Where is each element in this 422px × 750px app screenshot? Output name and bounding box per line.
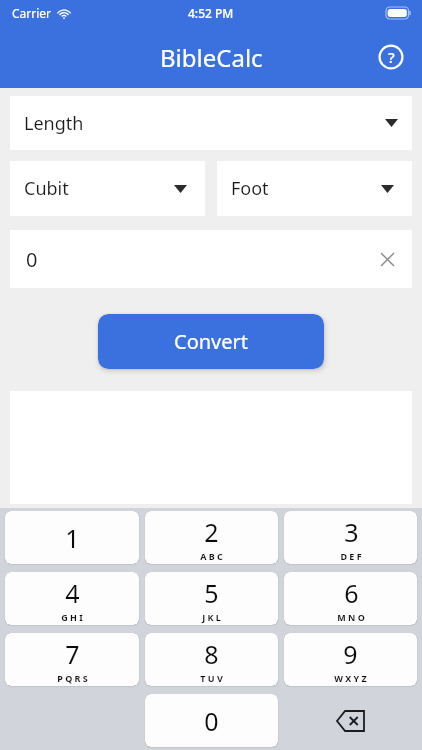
button[interactable]: 3 [284, 511, 417, 564]
button[interactable]: 9 [284, 633, 417, 686]
staticText: 9 [343, 637, 358, 671]
staticText: A B C [200, 550, 223, 562]
button[interactable]: Length [10, 96, 412, 150]
staticText: Cubit [24, 176, 69, 201]
button[interactable]: 0 [145, 694, 278, 747]
button[interactable]: Clear [374, 246, 400, 272]
staticText: BibleCalc [160, 41, 263, 74]
staticText: 0 [26, 246, 38, 273]
staticText: 4 [65, 576, 80, 610]
staticText: 2 [204, 515, 219, 549]
staticText: Convert [174, 328, 249, 355]
button[interactable]: 2 [145, 511, 278, 564]
staticText: Foot [231, 176, 269, 201]
button[interactable]: Help [372, 38, 410, 76]
button[interactable]: Backspace [284, 694, 417, 747]
staticText: Carrier [12, 5, 52, 21]
staticText: 0 [204, 704, 219, 738]
button[interactable]: 0 [10, 230, 412, 288]
staticText: D E F [340, 550, 362, 562]
button[interactable]: 4 [5, 572, 139, 625]
staticText: 8 [204, 637, 219, 671]
button[interactable]: 6 [284, 572, 417, 625]
button[interactable]: Cubit [10, 161, 205, 216]
staticText: P Q R S [57, 672, 88, 684]
button[interactable]: 8 [145, 633, 278, 686]
staticText: 7 [65, 637, 80, 671]
button[interactable]: 5 [145, 572, 278, 625]
button[interactable]: 1 [5, 511, 139, 564]
staticText: M N O [337, 611, 365, 623]
staticText: 1 [65, 521, 80, 555]
staticText: 5 [204, 576, 219, 610]
staticText: 4:52 PM [188, 5, 234, 21]
staticText: ? [388, 47, 395, 67]
button[interactable]: Convert [98, 314, 324, 369]
staticText: G H I [61, 611, 83, 623]
staticText: 3 [344, 515, 359, 549]
staticText: J K L [202, 611, 221, 623]
button[interactable]: Foot [217, 161, 412, 216]
staticText: 6 [344, 576, 359, 610]
button[interactable]: 7 [5, 633, 139, 686]
staticText: Length [24, 111, 84, 136]
staticText: T U V [200, 672, 223, 684]
staticText: W X Y Z [334, 672, 367, 684]
